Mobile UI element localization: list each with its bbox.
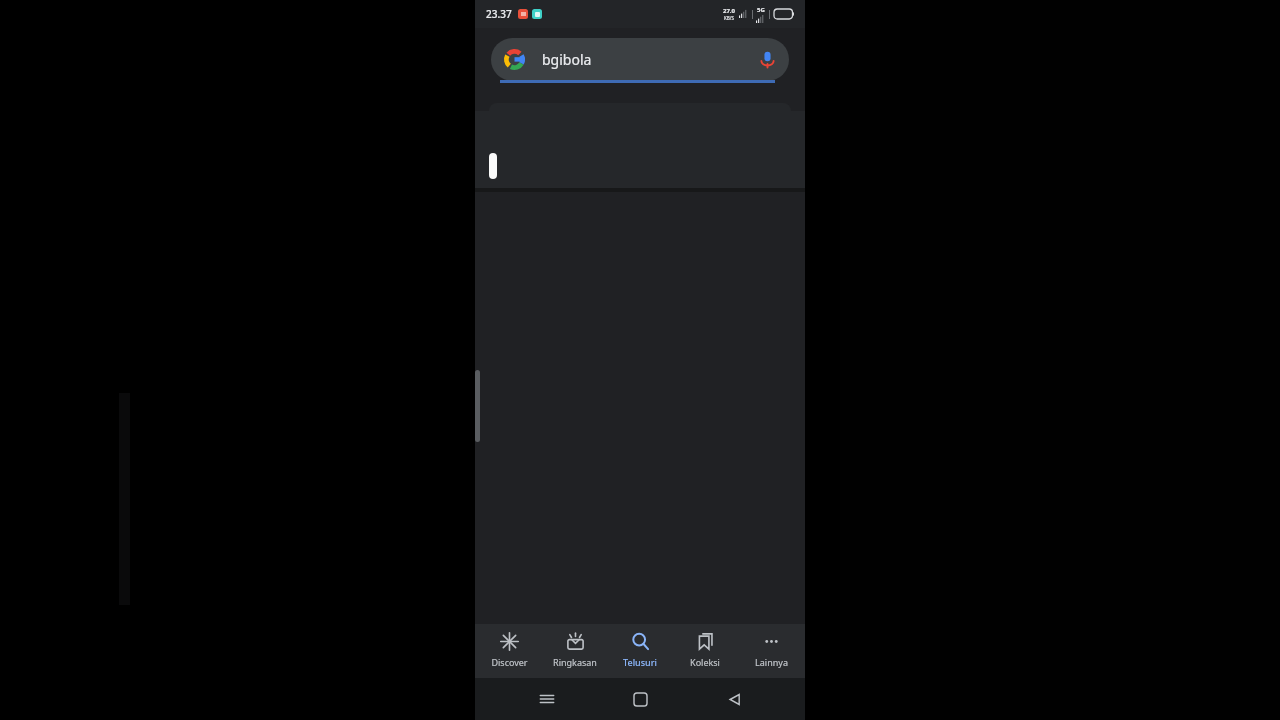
button[interactable]: Discover	[478, 624, 540, 678]
staticText: 27.0	[723, 7, 735, 15]
staticText: 5G	[757, 6, 765, 14]
staticText: Koleksi	[690, 656, 720, 668]
staticText: Lainnya	[755, 656, 788, 668]
button[interactable]: Lainnya	[740, 624, 802, 678]
button[interactable]: Ringkasan	[544, 624, 606, 678]
button[interactable]: Koleksi	[674, 624, 736, 678]
staticText: KB/S	[724, 15, 734, 21]
button[interactable]: Telusuri	[609, 624, 671, 678]
staticText: Discover	[491, 656, 528, 668]
button[interactable]: bgibola	[491, 38, 789, 81]
other: Discover	[500, 632, 519, 651]
staticText: Telusuri	[623, 656, 657, 668]
staticText: Ringkasan	[553, 656, 597, 668]
button[interactable]: Home	[618, 678, 662, 720]
staticText: bgibola	[542, 50, 592, 69]
other: Ringkasan	[566, 632, 585, 651]
other: Telusuri	[631, 632, 650, 651]
other: Lainnya	[762, 632, 781, 651]
staticText: 23.37	[486, 7, 512, 21]
button[interactable]: Recents	[525, 678, 569, 720]
button[interactable]: Back	[712, 678, 756, 720]
other: Koleksi	[696, 632, 715, 651]
